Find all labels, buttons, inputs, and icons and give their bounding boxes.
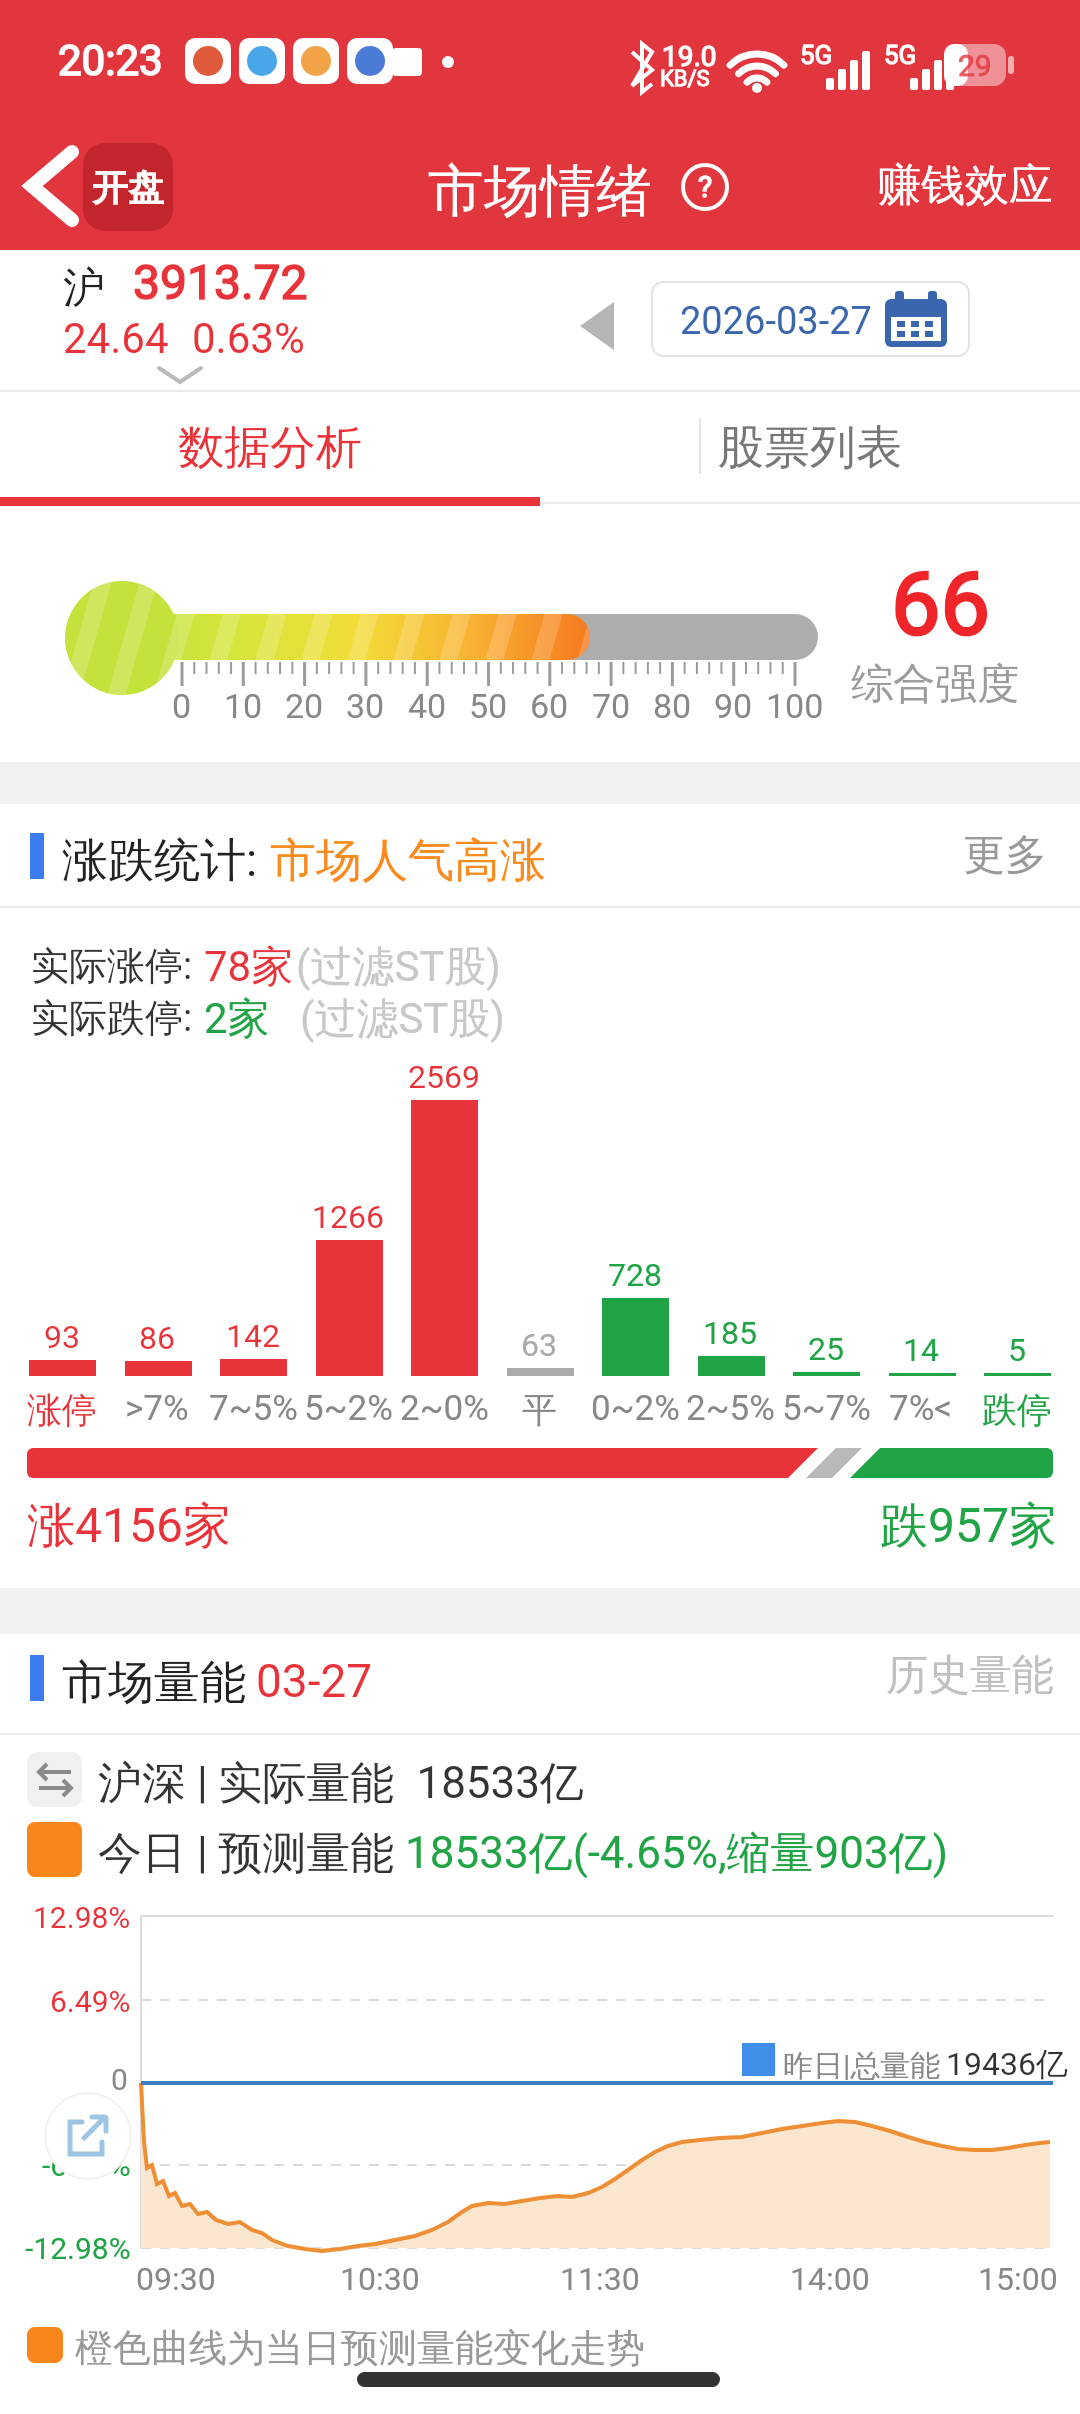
staticText: (过滤ST股) xyxy=(296,941,501,994)
staticText: 2026-03-27 xyxy=(680,299,872,344)
staticText: 03-27 xyxy=(256,1654,373,1708)
staticText: KB/S xyxy=(660,66,710,92)
button[interactable]: 2026-03-27 xyxy=(651,281,970,357)
staticText: 橙色曲线为当日预测量能变化走势 xyxy=(75,2324,645,2372)
staticText: 185 xyxy=(703,1314,757,1352)
button[interactable] xyxy=(566,290,630,362)
staticText: 今日 | 预测量能 xyxy=(98,1826,406,1881)
staticText: 0 xyxy=(111,2062,128,2097)
staticText: 63 xyxy=(521,1326,557,1364)
staticText: 24.64 xyxy=(63,314,169,363)
staticText: 30 xyxy=(346,686,385,726)
button[interactable]: 数据分析 xyxy=(0,392,540,504)
staticText: 跌957家 xyxy=(880,1496,1057,1556)
staticText: 25 xyxy=(808,1330,844,1368)
staticText: 开盘 xyxy=(92,165,164,210)
staticText: 11:30 xyxy=(560,2260,640,2298)
staticText: 实际跌停: xyxy=(31,994,193,1042)
staticText: 90 xyxy=(714,686,753,726)
staticText: 3913.72 xyxy=(133,254,308,310)
staticText: 2~5% xyxy=(686,1388,775,1429)
staticText: 综合强度 xyxy=(851,658,1019,711)
staticText: 1266 xyxy=(312,1198,384,1236)
staticText: 5G xyxy=(800,40,833,70)
staticText: 14:00 xyxy=(790,2260,870,2298)
staticText: 5 xyxy=(1008,1331,1026,1369)
staticText: (过滤ST股) xyxy=(300,993,505,1046)
staticText: 0 xyxy=(172,686,192,726)
staticText: 19436亿 xyxy=(946,2044,1068,2084)
staticText: 20:23 xyxy=(58,36,163,85)
staticText: 728 xyxy=(608,1256,662,1294)
button[interactable]: ? xyxy=(680,162,730,212)
staticText: 数据分析 xyxy=(178,419,362,477)
staticText: 跌停 xyxy=(982,1388,1052,1432)
staticText: >7% xyxy=(125,1388,189,1429)
staticText: 涨4156家 xyxy=(27,1496,231,1556)
staticText: 7~5% xyxy=(209,1388,298,1429)
staticText: 5G xyxy=(884,40,917,70)
staticText: ? xyxy=(698,169,713,204)
button[interactable]: 赚钱效应 xyxy=(870,155,1060,215)
staticText: 78家 xyxy=(204,941,294,994)
staticText: 15:00 xyxy=(978,2260,1058,2298)
staticText: 19.0 xyxy=(662,40,717,73)
staticText: 40 xyxy=(408,686,447,726)
staticText: 涨停 xyxy=(27,1388,97,1432)
staticText: 涨跌统计: xyxy=(62,832,258,890)
staticText: 实际涨停: xyxy=(31,942,193,990)
staticText: 66 xyxy=(891,552,990,655)
staticText: 142 xyxy=(226,1317,280,1355)
staticText: 历史量能 xyxy=(886,1649,1054,1702)
staticText: -12.98% xyxy=(25,2231,131,2266)
staticText: 昨日|总量能 xyxy=(783,2047,941,2085)
staticText: 股票列表 xyxy=(718,419,902,477)
button[interactable]: 开盘 xyxy=(83,143,173,231)
staticText: 70 xyxy=(592,686,631,726)
button[interactable]: 股票列表 xyxy=(540,392,1080,504)
staticText: 更多 xyxy=(963,829,1047,882)
staticText: 60 xyxy=(530,686,569,726)
staticText: 市场量能 xyxy=(62,1654,246,1712)
staticText: 5~7% xyxy=(782,1388,871,1429)
staticText: -6.49% xyxy=(42,2148,131,2183)
staticText: 18533亿(-4.65%,缩量903亿) xyxy=(405,1826,949,1881)
staticText: 0.63% xyxy=(192,314,305,363)
button[interactable]: 历史量能 xyxy=(870,1640,1070,1710)
staticText: 100 xyxy=(766,686,824,726)
staticText: 50 xyxy=(469,686,508,726)
staticText: 2569 xyxy=(408,1058,480,1096)
button[interactable] xyxy=(44,2092,132,2180)
staticText: 2家 xyxy=(204,993,270,1046)
staticText: 5~2% xyxy=(304,1388,393,1429)
staticText: 86 xyxy=(139,1319,175,1357)
button[interactable] xyxy=(10,140,90,240)
staticText: 80 xyxy=(653,686,692,726)
staticText: 赚钱效应 xyxy=(877,158,1053,213)
staticText: 09:30 xyxy=(136,2260,216,2298)
staticText: 93 xyxy=(44,1318,80,1356)
staticText: 沪深 | 实际量能 18533亿 xyxy=(98,1756,585,1811)
staticText: 29 xyxy=(958,48,992,83)
staticText: 10:30 xyxy=(340,2260,420,2298)
staticText: 市场人气高涨 xyxy=(270,832,546,890)
staticText: 2~0% xyxy=(400,1388,489,1429)
button[interactable]: 更多 xyxy=(940,820,1070,890)
staticText: 14 xyxy=(903,1331,939,1369)
staticText: 6.49% xyxy=(50,1984,131,2019)
staticText: 20 xyxy=(285,686,324,726)
staticText: 12.98% xyxy=(33,1900,131,1935)
staticText: 0~2% xyxy=(591,1388,680,1429)
staticText: 10 xyxy=(224,686,263,726)
staticText: 市场情绪 xyxy=(428,156,652,227)
staticText: 7%< xyxy=(889,1388,953,1429)
staticText: 平 xyxy=(522,1388,557,1432)
staticText: 沪 xyxy=(63,262,105,315)
